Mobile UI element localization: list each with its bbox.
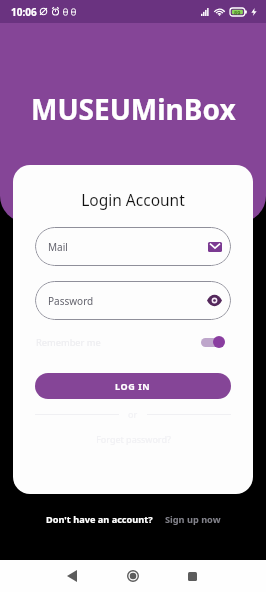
staticText: 10:06: [11, 5, 37, 19]
button[interactable]: LOG IN: [35, 373, 231, 399]
staticText: Password: [48, 294, 94, 308]
staticText: MUSEUMinBox: [31, 90, 236, 128]
button[interactable]: Remember me: [201, 335, 225, 349]
other: Show password: [207, 296, 222, 305]
button[interactable]: Password: [35, 281, 231, 320]
staticText: Don't have an account?: [46, 513, 153, 526]
staticText: or: [128, 408, 138, 420]
button[interactable]: Home: [121, 564, 145, 588]
staticText: Mail: [48, 240, 68, 254]
button[interactable]: Forget password?: [96, 433, 171, 445]
staticText: Login Account: [81, 189, 185, 210]
staticText: 89: [234, 9, 241, 16]
button[interactable]: Back: [60, 564, 84, 588]
button[interactable]: Recent apps: [180, 564, 204, 588]
staticText: LOG IN: [115, 380, 151, 392]
button[interactable]: Mail: [35, 227, 231, 266]
other: Email: [208, 242, 222, 252]
staticText: Remember me: [36, 336, 101, 349]
button[interactable]: Sign up now: [165, 513, 221, 526]
